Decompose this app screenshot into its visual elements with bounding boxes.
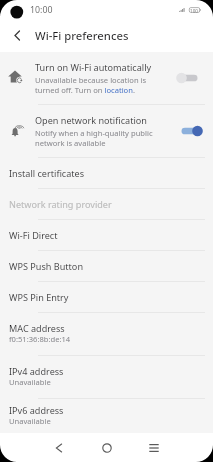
staticText: IPv6 address	[9, 404, 64, 416]
staticText: Notify when a high-quality public networ…	[35, 128, 153, 148]
button[interactable]: Switch off	[176, 71, 202, 85]
button[interactable]: Switch on	[176, 124, 202, 138]
staticText: Install certificates	[9, 167, 85, 179]
staticText: WPS Push Button	[9, 260, 83, 272]
button[interactable]: WPS Pin Entry	[0, 282, 213, 312]
staticText: 100	[190, 8, 198, 14]
button[interactable]: Turn on Wi-Fi automatically	[0, 52, 213, 104]
staticText: MAC address	[9, 322, 65, 334]
staticText: WPS Pin Entry	[9, 291, 69, 303]
button[interactable]: Install certificates	[0, 158, 213, 188]
staticText: 10:00	[30, 4, 53, 16]
staticText: f0:51:36:8b:de:14	[9, 334, 71, 344]
button[interactable]: MAC address	[0, 313, 213, 355]
button[interactable]: Wi-Fi Direct	[0, 220, 213, 250]
button[interactable]: Home	[84, 433, 130, 462]
staticText: Unavailable	[9, 377, 51, 387]
staticText: Wi-Fi Direct	[9, 229, 58, 241]
staticText: Unavailable because location is turned o…	[35, 75, 147, 95]
button[interactable]: IPv4 address	[0, 356, 213, 398]
staticText: Wi-Fi preferences	[35, 28, 129, 43]
button[interactable]: IPv6 address	[0, 399, 213, 433]
staticText: Turn on Wi-Fi automatically	[35, 61, 152, 73]
button[interactable]: Open network notification	[0, 105, 213, 157]
button[interactable]: Network rating provider	[0, 189, 213, 219]
staticText: IPv4 address	[9, 365, 64, 377]
button[interactable]: Navigate up	[0, 24, 34, 46]
staticText: Open network notification	[35, 114, 147, 126]
staticText: Unavailable	[9, 416, 51, 426]
staticText: Network rating provider	[9, 198, 112, 210]
button[interactable]: Back	[36, 433, 82, 462]
button[interactable]: WPS Push Button	[0, 251, 213, 281]
button[interactable]: Recent apps	[131, 433, 177, 462]
